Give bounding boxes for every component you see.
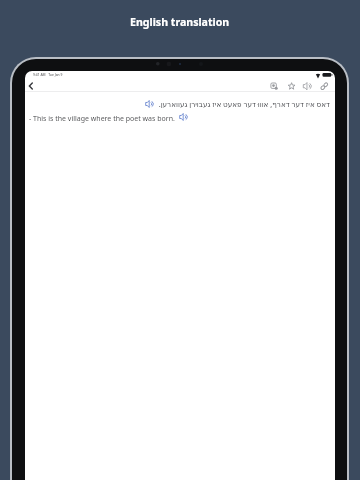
button[interactable] <box>285 80 298 92</box>
button[interactable] <box>145 99 155 109</box>
button[interactable] <box>26 80 38 92</box>
button[interactable] <box>179 112 189 122</box>
staticText: דאס איז דער דארף, אוווּ דער פאעט איז געב… <box>158 99 330 109</box>
staticText: 9:41 AM Tue Jan 9 <box>33 72 62 76</box>
staticText: English translation <box>130 15 230 29</box>
button[interactable] <box>267 80 280 92</box>
button[interactable] <box>318 80 331 92</box>
button[interactable] <box>301 80 314 92</box>
staticText: - This is the village where the poet was… <box>29 114 175 124</box>
